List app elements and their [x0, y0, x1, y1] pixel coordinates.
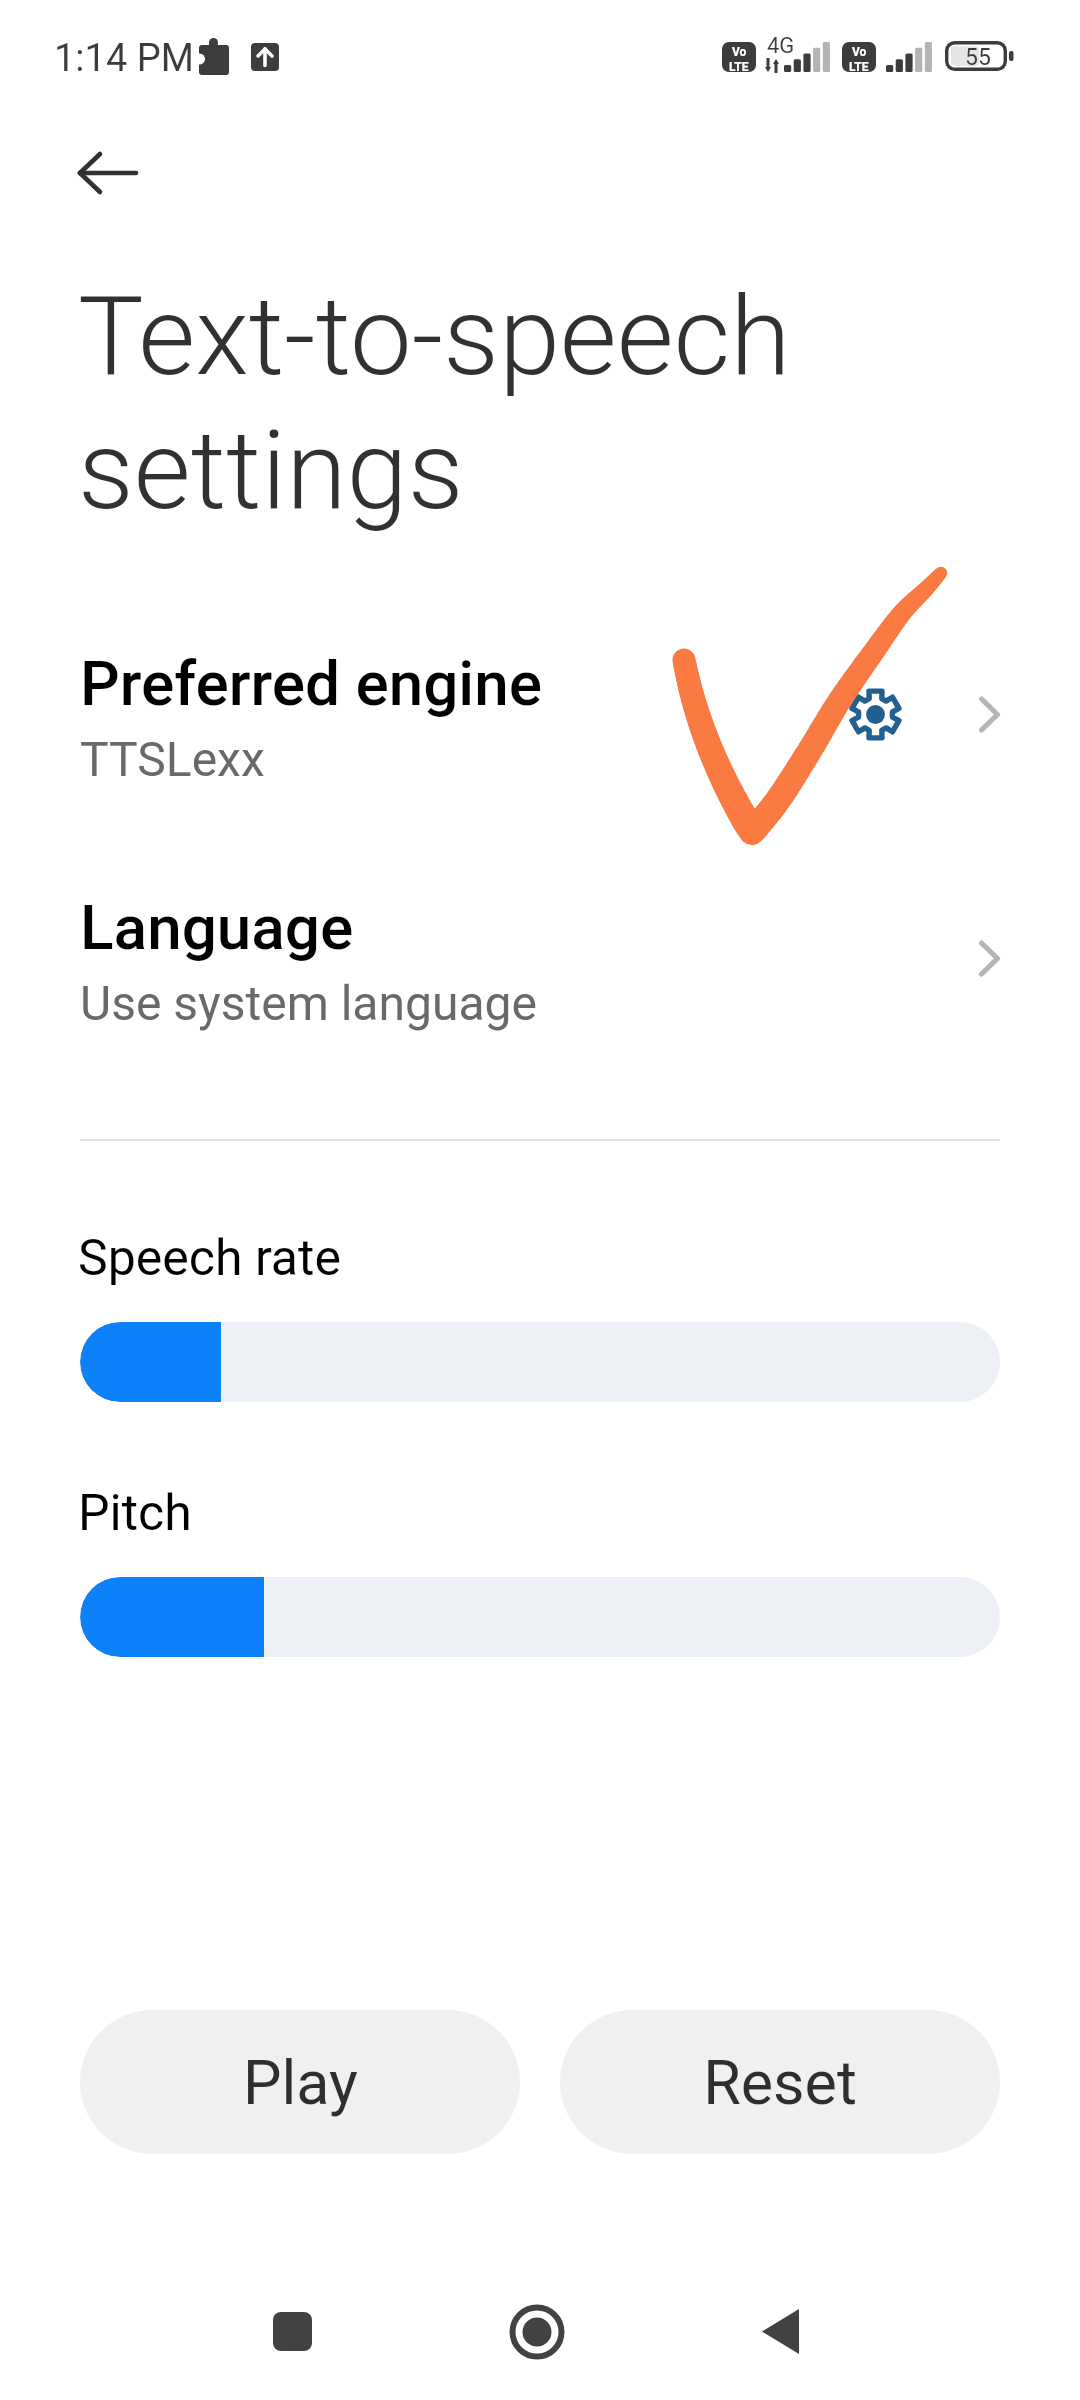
staticText: TTSLexx [80, 731, 265, 787]
staticText: 55 [965, 44, 991, 71]
button[interactable]: Slider [80, 1322, 1000, 1402]
staticText: Language [80, 891, 354, 964]
staticText: Play [243, 2047, 358, 2118]
staticText: Pitch [78, 1484, 192, 1543]
button[interactable]: Slider [80, 1577, 1000, 1657]
button[interactable]: Back [60, 133, 140, 213]
staticText: Use system language [80, 975, 537, 1031]
staticText: 1:14 PM [54, 36, 194, 81]
staticText: Vo [732, 45, 747, 59]
staticText: LTE [849, 60, 869, 72]
button[interactable]: Play [80, 2010, 520, 2154]
staticText: Vo [852, 45, 867, 59]
button[interactable]: Home [497, 2292, 577, 2372]
staticText: LTE [729, 60, 749, 72]
staticText: 4G [767, 33, 795, 59]
staticText: Speech rate [78, 1229, 341, 1288]
button[interactable]: Engine settings [847, 686, 904, 743]
staticText: Text-to-speech settings [78, 272, 791, 535]
button[interactable]: Language [0, 873, 1080, 1073]
button[interactable]: Reset [560, 2010, 1000, 2154]
button[interactable]: Recent apps [253, 2292, 333, 2372]
button[interactable]: Back [742, 2292, 822, 2372]
staticText: Reset [703, 2047, 857, 2118]
staticText: Preferred engine [80, 647, 542, 720]
button[interactable]: Preferred engine [0, 629, 1080, 829]
